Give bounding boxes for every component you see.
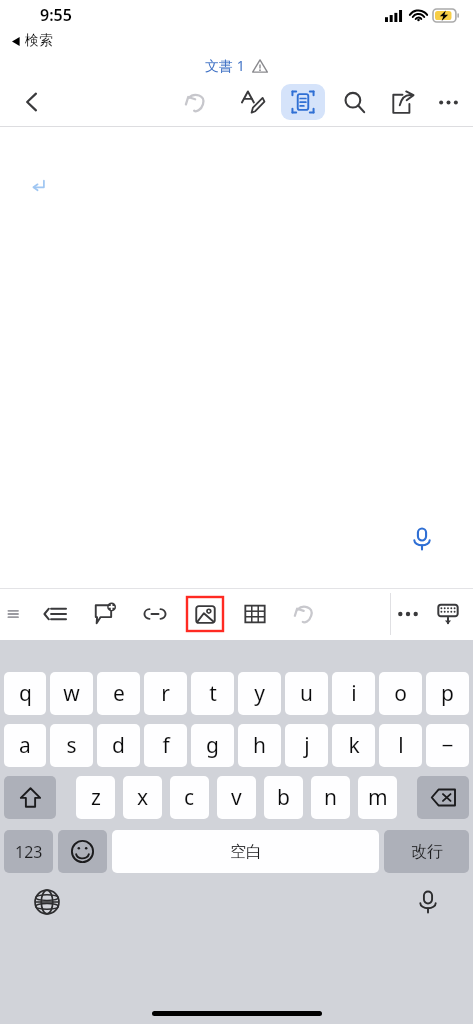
button[interactable]: g [191,724,234,767]
staticText: 9:55 [40,4,72,26]
staticText: y [254,679,265,708]
button[interactable]: Emoji [58,830,107,873]
button[interactable]: Undo [175,81,217,123]
staticText: v [231,783,242,812]
button[interactable]: p [426,672,469,715]
staticText: z [91,783,101,812]
staticText: w [63,679,80,708]
button[interactable]: r [144,672,187,715]
staticText: 改行 [411,842,443,862]
button[interactable]: Backspace [417,776,469,819]
button[interactable]: 空白 [112,830,379,873]
button[interactable]: m [358,776,397,819]
button[interactable]: 文書 1 [205,56,268,75]
button[interactable]: Table [238,592,272,636]
button[interactable]: l [379,724,422,767]
button[interactable]: Add comment [88,592,122,636]
button[interactable]: 123 [4,830,53,873]
button[interactable]: d [97,724,140,767]
button[interactable]: Change keyboard [30,885,64,919]
button[interactable]: f [144,724,187,767]
button[interactable]: x [123,776,162,819]
button[interactable]: v [217,776,256,819]
staticText: a [19,731,31,760]
staticText: d [112,731,125,760]
staticText: c [184,783,195,812]
button[interactable]: s [50,724,93,767]
button[interactable]: Hide keyboard [431,592,465,636]
staticText: s [66,731,77,760]
button[interactable]: u [285,672,328,715]
staticText: b [277,783,290,812]
button[interactable]: Back [10,80,54,124]
staticText: h [253,731,266,760]
staticText: − [441,731,454,760]
button[interactable]: Link [138,592,172,636]
button[interactable]: Shift [4,776,56,819]
staticText: k [348,731,360,760]
button[interactable]: e [97,672,140,715]
button[interactable]: More [391,592,425,636]
staticText: g [206,731,219,760]
button[interactable]: c [170,776,209,819]
button[interactable]: Dictation [411,885,445,919]
button[interactable]: Search [333,81,375,123]
staticText: j [304,731,310,760]
button[interactable]: y [238,672,281,715]
button[interactable]: Share [381,81,423,123]
button[interactable]: a [4,724,46,767]
staticText: u [300,679,313,708]
button[interactable]: Indent [0,588,18,640]
staticText: o [394,679,407,708]
button[interactable]: z [76,776,115,819]
button[interactable]: o [379,672,422,715]
button[interactable]: Layout [281,84,325,120]
staticText: m [368,783,388,812]
button[interactable]: j [285,724,328,767]
button[interactable]: Markup [231,81,273,123]
staticText: x [137,783,149,812]
staticText: i [351,679,357,708]
button[interactable]: Insert image [186,596,224,632]
staticText: n [324,783,337,812]
button[interactable]: k [332,724,375,767]
button[interactable]: More [427,81,469,123]
staticText: 123 [15,841,43,863]
staticText: e [113,679,125,708]
button[interactable]: Outdent [38,592,72,636]
button[interactable]: − [426,724,469,767]
button[interactable]: 検索 [12,30,473,52]
button[interactable]: i [332,672,375,715]
button[interactable]: 改行 [384,830,469,873]
staticText: f [162,731,170,760]
staticText: 空白 [230,842,262,862]
staticText: 文書 1 [205,56,245,75]
staticText: l [398,731,404,760]
button[interactable]: b [264,776,303,819]
button[interactable]: q [4,672,46,715]
staticText: 検索 [25,32,53,50]
button[interactable]: h [238,724,281,767]
button[interactable]: Dictate [392,509,452,569]
other: Warning [252,58,268,74]
staticText: r [161,679,170,708]
button[interactable]: n [311,776,350,819]
staticText: p [441,679,454,708]
staticText: t [209,679,217,708]
button[interactable]: t [191,672,234,715]
staticText: q [19,679,32,708]
button[interactable]: Undo [288,592,322,636]
button[interactable]: w [50,672,93,715]
